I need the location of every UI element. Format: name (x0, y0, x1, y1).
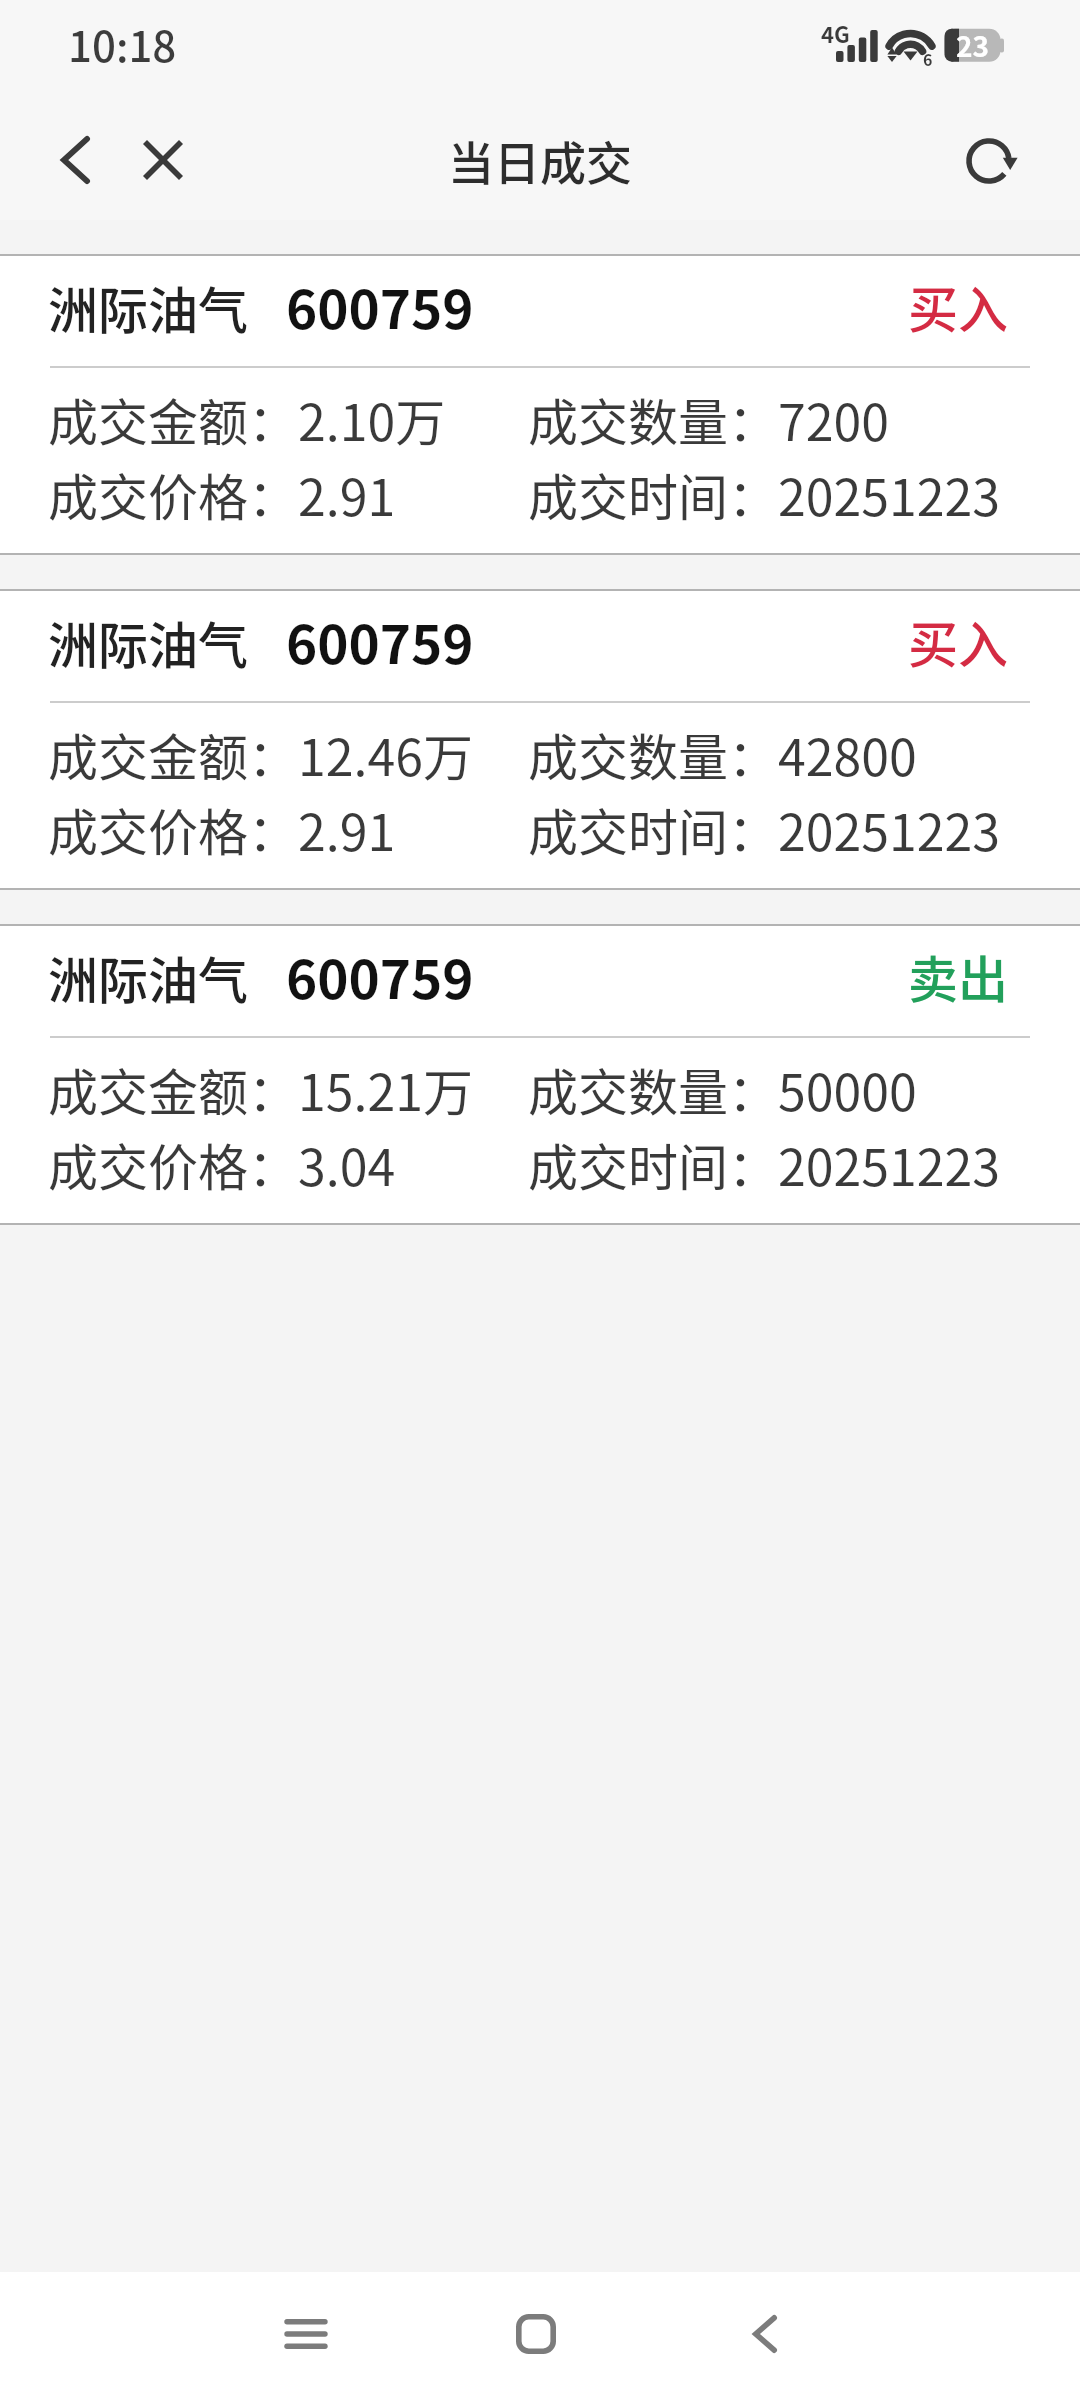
staticText: 4G (821, 17, 850, 49)
staticText: 600759 (286, 268, 474, 345)
staticText: 卖出 (908, 940, 1008, 1012)
staticText: 洲际油气 (48, 941, 248, 1013)
staticText: 成交价格：3.04 (48, 1128, 528, 1200)
staticText: 成交数量：7200 (528, 383, 889, 455)
button[interactable]: Menu (246, 2274, 366, 2394)
staticText: 600759 (286, 603, 474, 680)
staticText: 600759 (286, 938, 474, 1015)
staticText: 买入 (908, 270, 1008, 342)
staticText: 成交金额：12.46万 (48, 718, 528, 790)
staticText: 当日成交 (448, 127, 632, 194)
staticText: 洲际油气 (48, 606, 248, 678)
staticText: 成交金额：15.21万 (48, 1053, 528, 1125)
button[interactable]: Close (121, 118, 205, 202)
staticText: 洲际油气 (48, 271, 248, 343)
staticText: 成交数量：50000 (528, 1053, 917, 1125)
staticText: 23 (956, 25, 990, 66)
staticText: 10:18 (68, 13, 177, 74)
button[interactable]: 洲际油气 (0, 591, 1080, 888)
staticText: 成交数量：42800 (528, 718, 917, 790)
staticText: 成交价格：2.91 (48, 793, 528, 865)
button[interactable]: Refresh (950, 119, 1034, 203)
staticText: 买入 (908, 605, 1008, 677)
button[interactable]: Home (476, 2274, 596, 2394)
staticText: 6 (923, 47, 933, 70)
button[interactable]: 洲际油气 (0, 256, 1080, 553)
button[interactable]: Back (705, 2274, 825, 2394)
staticText: 成交时间：20251223 (528, 793, 1000, 865)
button[interactable]: Back (33, 118, 117, 202)
staticText: 成交时间：20251223 (528, 458, 1000, 530)
staticText: 成交时间：20251223 (528, 1128, 1000, 1200)
button[interactable]: 洲际油气 (0, 926, 1080, 1223)
staticText: 成交金额：2.10万 (48, 383, 528, 455)
staticText: 成交价格：2.91 (48, 458, 528, 530)
